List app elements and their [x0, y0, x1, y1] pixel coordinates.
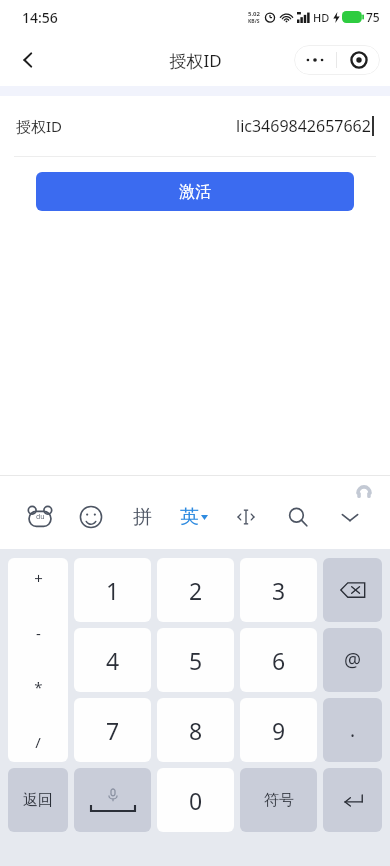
button[interactable]: Space, voice input	[74, 768, 151, 832]
button[interactable]: Emoji	[65, 497, 116, 537]
staticText: 8	[189, 715, 203, 746]
button[interactable]: 激活	[36, 172, 354, 211]
button[interactable]: 符号	[240, 768, 317, 832]
button[interactable]: 0	[157, 768, 234, 832]
staticText: -	[36, 623, 41, 643]
staticText: 2	[189, 575, 203, 606]
staticText: 14:56	[22, 8, 58, 27]
staticText: HD	[313, 10, 330, 25]
button[interactable]: Pinyin	[116, 497, 168, 537]
button[interactable]: 5	[157, 628, 234, 692]
button[interactable]: +	[8, 558, 68, 762]
button[interactable]: Target	[337, 45, 380, 75]
button[interactable]: Delete	[323, 558, 382, 622]
staticText: 拼	[133, 505, 152, 529]
staticText: *	[34, 677, 43, 697]
button[interactable]: 6	[240, 628, 317, 692]
staticText: 授权ID	[16, 116, 63, 136]
staticText: 4	[106, 645, 120, 676]
staticText: 7	[106, 715, 120, 746]
button[interactable]: Enter	[323, 768, 382, 832]
button[interactable]: 1	[74, 558, 151, 622]
staticText: KB/S	[248, 18, 260, 25]
button[interactable]: 7	[74, 698, 151, 762]
staticText: 符号	[264, 791, 294, 810]
staticText: @	[344, 647, 362, 673]
staticText: 激活	[179, 182, 211, 202]
staticText: 1	[106, 575, 120, 606]
button[interactable]: Back	[8, 40, 48, 80]
staticText: 授权ID	[169, 49, 222, 72]
staticText: 0	[189, 785, 203, 816]
button[interactable]: 9	[240, 698, 317, 762]
staticText: 5.02	[248, 10, 260, 18]
button[interactable]: Baidu input	[14, 497, 65, 537]
button[interactable]: 3	[240, 558, 317, 622]
button[interactable]: 4	[74, 628, 151, 692]
staticText: 6	[272, 645, 286, 676]
button[interactable]: @	[323, 628, 382, 692]
button[interactable]: English mode	[168, 497, 220, 537]
staticText: lic3469842657662	[236, 115, 371, 137]
staticText: du	[36, 512, 45, 522]
staticText: 9	[272, 715, 286, 746]
staticText: /	[35, 732, 41, 752]
button[interactable]: 返回	[8, 768, 68, 832]
button[interactable]: Move cursor	[220, 497, 272, 537]
staticText: +	[34, 568, 43, 588]
staticText: .	[350, 717, 356, 743]
staticText: 3	[272, 575, 286, 606]
button[interactable]: 8	[157, 698, 234, 762]
staticText: 5	[189, 645, 203, 676]
staticText: 返回	[23, 791, 53, 810]
button[interactable]: Search	[272, 497, 324, 537]
button[interactable]: 2	[157, 558, 234, 622]
button[interactable]: More options	[294, 45, 336, 75]
staticText: 英	[180, 505, 199, 529]
staticText: 75	[366, 9, 380, 25]
button[interactable]: .	[323, 698, 382, 762]
button[interactable]: Hide keyboard	[324, 497, 376, 537]
